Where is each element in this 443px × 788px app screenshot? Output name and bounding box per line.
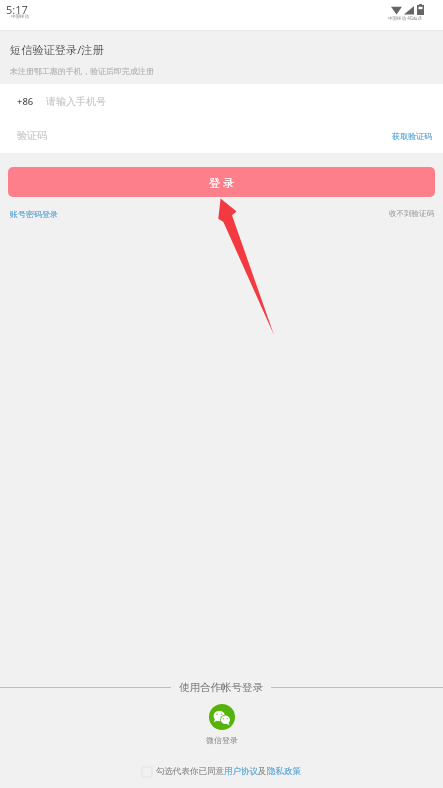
button[interactable]: +86 bbox=[0, 84, 443, 118]
staticText: 验证码 bbox=[17, 129, 47, 142]
button[interactable]: 账号密码登录 bbox=[10, 209, 58, 219]
button[interactable]: Agree to terms checkbox bbox=[142, 767, 152, 777]
staticText: +86 bbox=[17, 95, 34, 108]
staticText: 及 bbox=[258, 766, 267, 777]
staticText: 勾选代表你已同意 bbox=[156, 766, 224, 777]
button[interactable]: 用户协议 bbox=[224, 766, 258, 777]
staticText: 短信验证登录/注册 bbox=[10, 42, 104, 57]
button[interactable]: WeChat login bbox=[206, 704, 238, 745]
staticText: 用户协议 bbox=[224, 766, 258, 777]
other: WeChat login bbox=[209, 704, 235, 730]
button[interactable]: 收不到验证码 bbox=[389, 209, 434, 218]
staticText: 使用合作帐号登录 bbox=[179, 681, 263, 694]
button[interactable]: 获取验证码 bbox=[392, 131, 443, 141]
staticText: 未注册鄂工惠的手机，验证后即完成注册 bbox=[10, 66, 154, 76]
staticText: 隐私政策 bbox=[267, 766, 301, 777]
staticText: 中国移动 4G电话 bbox=[388, 15, 423, 21]
staticText: 账号密码登录 bbox=[10, 209, 58, 219]
staticText: 获取验证码 bbox=[392, 131, 432, 141]
staticText: 微信登录 bbox=[206, 735, 238, 745]
staticText: 收不到验证码 bbox=[389, 209, 434, 218]
staticText: 中国移动 bbox=[11, 14, 29, 20]
button[interactable]: 隐私政策 bbox=[267, 766, 301, 777]
button[interactable]: 登 录 bbox=[8, 167, 435, 197]
staticText: 5:17 bbox=[6, 2, 28, 17]
staticText: 请输入手机号 bbox=[46, 95, 106, 108]
staticText: 登 录 bbox=[209, 175, 235, 190]
